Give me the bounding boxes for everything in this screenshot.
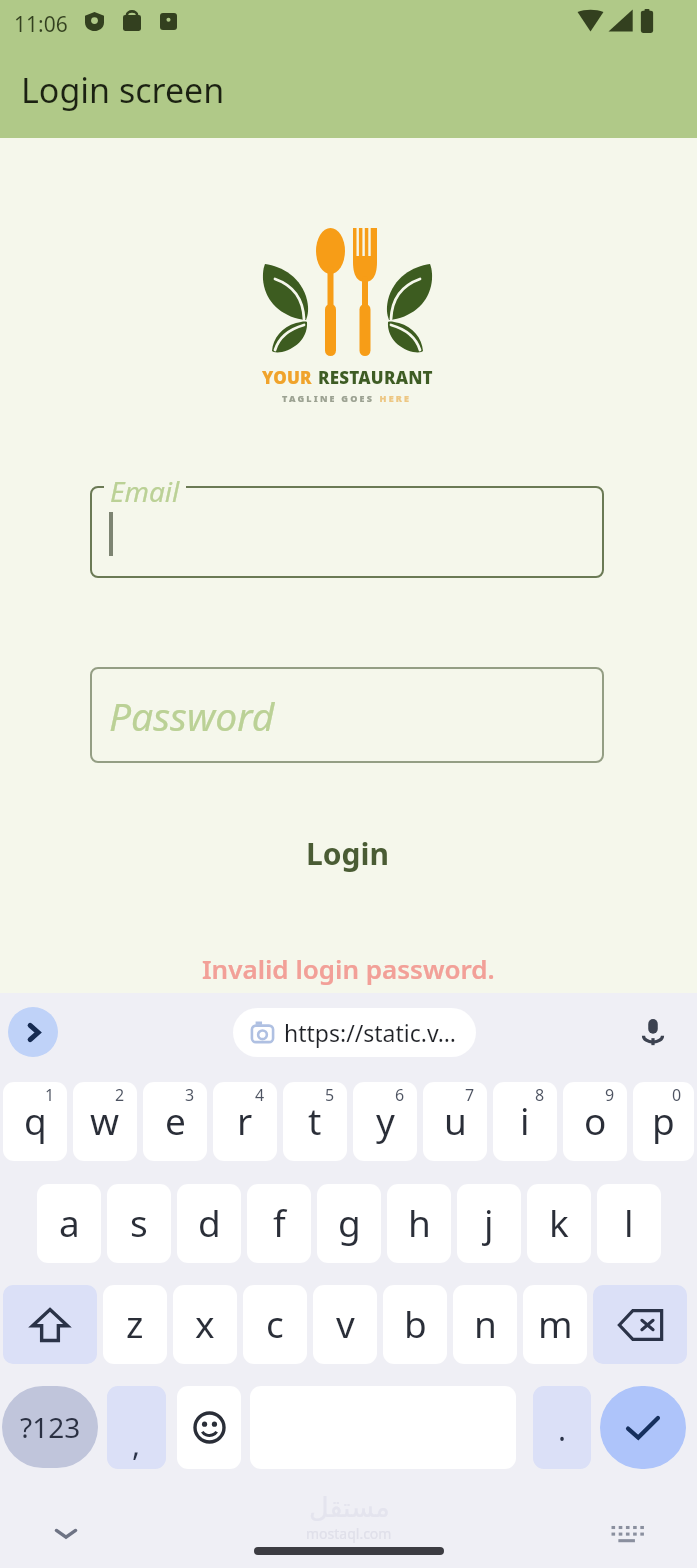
button[interactable]: Login <box>270 822 425 884</box>
staticText: o <box>584 1095 607 1145</box>
staticText: YOUR <box>262 366 312 389</box>
staticText: k <box>549 1197 569 1247</box>
staticText: mostaql.com <box>306 1524 392 1543</box>
button[interactable]: , <box>107 1386 166 1469</box>
button[interactable]: d <box>177 1184 241 1263</box>
staticText: 6 <box>395 1084 405 1106</box>
button[interactable]: k <box>527 1184 591 1263</box>
staticText: c <box>266 1298 284 1348</box>
staticText: Invalid login password. <box>202 951 495 986</box>
button[interactable]: Voice input <box>633 1012 673 1052</box>
staticText: . <box>558 1409 567 1450</box>
staticText: TAGLINE GOES <box>282 392 375 404</box>
button[interactable]: r <box>213 1082 277 1161</box>
button[interactable]: u <box>423 1082 487 1161</box>
button[interactable]: z <box>103 1285 167 1364</box>
staticText: p <box>652 1095 675 1145</box>
staticText: z <box>126 1298 144 1348</box>
button[interactable]: x <box>173 1285 237 1364</box>
button[interactable]: e <box>143 1082 207 1161</box>
button[interactable]: m <box>523 1285 587 1364</box>
staticText: n <box>474 1298 497 1348</box>
staticText: 5 <box>325 1084 335 1106</box>
staticText: , <box>132 1424 141 1465</box>
button[interactable]: Enter <box>600 1386 686 1469</box>
staticText: Email <box>110 472 180 510</box>
button[interactable]: Hide keyboard <box>50 1517 82 1549</box>
button[interactable]: j <box>457 1184 521 1263</box>
button[interactable]: a <box>37 1184 101 1263</box>
staticText: Login <box>306 833 389 874</box>
button[interactable]: w <box>73 1082 137 1161</box>
staticText: Password <box>109 689 275 742</box>
button[interactable]: g <box>317 1184 381 1263</box>
staticText: q <box>24 1095 47 1145</box>
staticText: r <box>237 1095 253 1145</box>
button[interactable]: h <box>387 1184 451 1263</box>
button[interactable]: ?123 <box>2 1386 98 1468</box>
staticText: 4 <box>255 1084 265 1106</box>
button[interactable]: n <box>453 1285 517 1364</box>
staticText: m <box>538 1298 573 1348</box>
staticText: l <box>624 1197 634 1247</box>
staticText: 9 <box>605 1084 615 1106</box>
button[interactable]: https://static.v… <box>233 1008 476 1057</box>
button[interactable]: Emoji <box>177 1386 241 1469</box>
staticText: f <box>273 1197 286 1247</box>
button[interactable]: Next <box>8 1007 58 1057</box>
staticText: 2 <box>115 1084 125 1106</box>
button[interactable]: s <box>107 1184 171 1263</box>
button[interactable]: c <box>243 1285 307 1364</box>
staticText: ?123 <box>20 1408 81 1446</box>
staticText: مستقل <box>309 1492 390 1523</box>
staticText: t <box>308 1095 322 1145</box>
button[interactable]: Change keyboard <box>609 1522 645 1544</box>
button[interactable]: t <box>283 1082 347 1161</box>
button[interactable]: Password <box>90 667 604 763</box>
staticText: a <box>59 1197 80 1247</box>
button[interactable]: Backspace <box>593 1285 687 1364</box>
staticText: 1 <box>45 1084 55 1106</box>
staticText: d <box>198 1197 221 1247</box>
staticText: s <box>130 1197 148 1247</box>
button[interactable]: f <box>247 1184 311 1263</box>
staticText: u <box>444 1095 467 1145</box>
staticText: w <box>90 1095 120 1145</box>
staticText: https://static.v… <box>284 1017 456 1048</box>
button[interactable]: b <box>383 1285 447 1364</box>
button[interactable]: . <box>533 1386 591 1469</box>
button[interactable]: v <box>313 1285 377 1364</box>
button[interactable]: o <box>563 1082 627 1161</box>
staticText: g <box>338 1197 361 1247</box>
staticText: x <box>195 1298 215 1348</box>
staticText: 11:06 <box>14 10 68 39</box>
staticText: v <box>336 1298 355 1348</box>
button[interactable]: y <box>353 1082 417 1161</box>
staticText: h <box>408 1197 431 1247</box>
staticText: e <box>165 1095 186 1145</box>
staticText: 0 <box>672 1084 682 1106</box>
staticText: RESTAURANT <box>318 366 433 389</box>
staticText: b <box>404 1298 427 1348</box>
staticText: i <box>520 1095 530 1145</box>
staticText: HERE <box>375 392 412 404</box>
staticText: Login screen <box>21 67 225 113</box>
staticText: 8 <box>535 1084 545 1106</box>
button[interactable] <box>90 486 604 578</box>
button[interactable]: p <box>633 1082 694 1161</box>
button[interactable]: q <box>3 1082 67 1161</box>
staticText: 3 <box>185 1084 195 1106</box>
button[interactable]: Shift <box>3 1285 97 1364</box>
staticText: 7 <box>465 1084 475 1106</box>
staticText: y <box>376 1095 395 1145</box>
staticText: j <box>484 1197 494 1247</box>
button[interactable]: l <box>597 1184 661 1263</box>
button[interactable]: i <box>493 1082 557 1161</box>
